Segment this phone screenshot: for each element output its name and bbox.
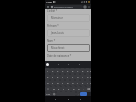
staticText: p: [90, 76, 91, 79]
staticText: b: [73, 88, 75, 91]
staticText: Nom *: [47, 39, 56, 43]
button[interactable]: Recents: [78, 97, 83, 102]
staticText: h: [72, 82, 74, 85]
button[interactable]: Mouchinot: [47, 44, 90, 52]
staticText: y: [72, 76, 74, 79]
staticText: 8: [82, 70, 84, 73]
staticText: Monsieur: [51, 16, 63, 20]
button[interactable]: i: [80, 74, 85, 80]
staticText: e: [57, 76, 59, 79]
button[interactable]: m: [90, 80, 91, 86]
button[interactable]: assurance.fr/devis: [51, 5, 82, 9]
button[interactable]: ⇧: [45, 86, 51, 92]
staticText: 4: [62, 70, 64, 73]
button[interactable]: a: [45, 74, 50, 80]
staticText: ☺: [53, 93, 56, 96]
staticText: 2: [52, 70, 54, 73]
button[interactable]: n: [76, 86, 81, 92]
staticText: 3: [57, 70, 59, 73]
staticText: t: [67, 76, 68, 79]
staticText: j: [77, 82, 78, 85]
button[interactable]: 2: [50, 68, 55, 74]
staticText: d: [57, 82, 59, 85]
staticText: x: [58, 88, 60, 91]
button[interactable]: x: [56, 86, 61, 92]
button[interactable]: .: [76, 92, 80, 96]
button[interactable]: v: [66, 86, 71, 92]
staticText: f: [62, 82, 63, 85]
staticText: u: [77, 76, 79, 79]
button[interactable]: s: [50, 80, 55, 86]
button[interactable]: o: [85, 74, 90, 80]
staticText: Civilité *: [47, 9, 58, 13]
button[interactable]: f: [60, 80, 65, 86]
staticText: v: [68, 88, 70, 91]
button[interactable]: Tabs: [83, 5, 87, 9]
button[interactable]: 0: [90, 68, 91, 74]
button[interactable]: ?123: [45, 92, 52, 96]
button[interactable]: l: [85, 80, 90, 86]
button[interactable]: d: [55, 80, 60, 86]
button[interactable]: b: [71, 86, 76, 92]
staticText: m: [90, 82, 91, 85]
staticText: w: [53, 88, 55, 91]
staticText: 0: [90, 70, 91, 73]
button[interactable]: 7: [75, 68, 80, 74]
button[interactable]: Jean-Louis: [47, 29, 90, 37]
staticText: ': [83, 88, 84, 91]
staticText: l: [87, 82, 88, 85]
button[interactable]: ☺: [52, 92, 56, 96]
button[interactable]: c: [61, 86, 66, 92]
button[interactable]: k: [80, 80, 85, 86]
button[interactable]: h: [70, 80, 75, 86]
button[interactable]: 1: [45, 68, 50, 74]
staticText: Mouchinot: [51, 46, 65, 50]
button[interactable]: q: [45, 80, 50, 86]
button[interactable]: u: [75, 74, 80, 80]
button[interactable]: 5: [65, 68, 70, 74]
button[interactable]: Google: [46, 63, 49, 66]
button[interactable]: w: [51, 86, 56, 92]
button[interactable]: j: [75, 80, 80, 86]
button[interactable]: r: [60, 74, 65, 80]
button[interactable]: Monsieur: [47, 14, 90, 22]
button[interactable]: 4: [60, 68, 65, 74]
button[interactable]: z: [50, 74, 55, 80]
staticText: ⇧: [47, 88, 49, 91]
button[interactable]: g: [65, 80, 70, 86]
button[interactable]: Back: [53, 97, 58, 102]
staticText: 7: [77, 70, 79, 73]
staticText: 5: [67, 70, 69, 73]
staticText: s: [52, 82, 54, 85]
button[interactable]: p: [90, 74, 91, 80]
staticText: q: [47, 82, 49, 85]
button[interactable]: Account: [46, 5, 50, 9]
staticText: z: [52, 76, 54, 79]
staticText: assurance.fr/devis: [54, 6, 73, 9]
button[interactable]: t: [65, 74, 70, 80]
button[interactable]: y: [70, 74, 75, 80]
staticText: Jean-Louis: [51, 31, 64, 35]
button[interactable]: Home: [66, 97, 71, 102]
staticText: 1: [47, 70, 49, 73]
button[interactable]: [80, 92, 87, 96]
button[interactable]: 3: [55, 68, 60, 74]
staticText: Prénom *: [47, 24, 59, 28]
button[interactable]: 6: [70, 68, 75, 74]
staticText: 9: [87, 70, 89, 73]
staticText: .: [78, 93, 79, 96]
staticText: 14:35: [46, 1, 52, 4]
button[interactable]: ': [81, 86, 86, 92]
button[interactable]: 9: [85, 68, 90, 74]
staticText: ⌫: [87, 88, 91, 91]
staticText: a: [47, 76, 49, 79]
button[interactable]: 8: [80, 68, 85, 74]
button[interactable]: ⌫: [86, 86, 91, 92]
button[interactable]: More options: [87, 5, 90, 8]
button[interactable]: e: [55, 74, 60, 80]
staticText: ?123: [46, 93, 51, 96]
staticText: n: [78, 88, 80, 91]
staticText: i: [82, 76, 83, 79]
staticText: Date de naissance *: [47, 54, 72, 58]
